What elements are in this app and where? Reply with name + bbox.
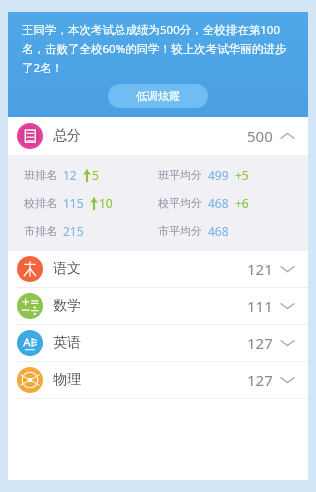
staticText: 英语 <box>53 334 81 352</box>
staticText: +5 <box>235 167 249 183</box>
staticText: 121 <box>247 259 273 279</box>
staticText: 215 <box>63 223 84 239</box>
staticText: 校平均分 <box>158 196 202 210</box>
button[interactable]: 英语 <box>8 325 308 361</box>
staticText: 数学 <box>53 297 81 315</box>
staticText: 115 <box>63 195 84 211</box>
staticText: 111 <box>247 296 273 316</box>
staticText: 468 <box>208 223 229 239</box>
staticText: 物理 <box>53 371 81 389</box>
button[interactable]: 物理 <box>8 362 308 398</box>
staticText: 468 <box>208 195 229 211</box>
staticText: 班排名 <box>24 168 57 182</box>
staticText: 12 <box>63 167 77 183</box>
staticText: 127 <box>247 333 273 353</box>
button[interactable]: 语文 <box>8 251 308 287</box>
staticText: 总分 <box>53 127 81 145</box>
staticText: 低调炫耀 <box>136 89 180 103</box>
button[interactable]: 低调炫耀 <box>108 84 208 108</box>
staticText: 市平均分 <box>158 224 202 238</box>
staticText: 市排名 <box>24 224 57 238</box>
staticText: 10 <box>99 195 113 211</box>
staticText: 5 <box>92 167 99 183</box>
staticText: 语文 <box>53 260 81 278</box>
staticText: +6 <box>235 195 249 211</box>
staticText: 校排名 <box>24 196 57 210</box>
staticText: 499 <box>208 167 229 183</box>
staticText: 127 <box>247 370 273 390</box>
button[interactable]: 总分 <box>8 117 308 155</box>
staticText: 班平均分 <box>158 168 202 182</box>
staticText: 王同学，本次考试总成绩为500分，全校排在第100名，击败了全校60%的同学！较… <box>22 22 294 76</box>
button[interactable]: 数学 <box>8 288 308 324</box>
staticText: 500 <box>247 126 273 146</box>
